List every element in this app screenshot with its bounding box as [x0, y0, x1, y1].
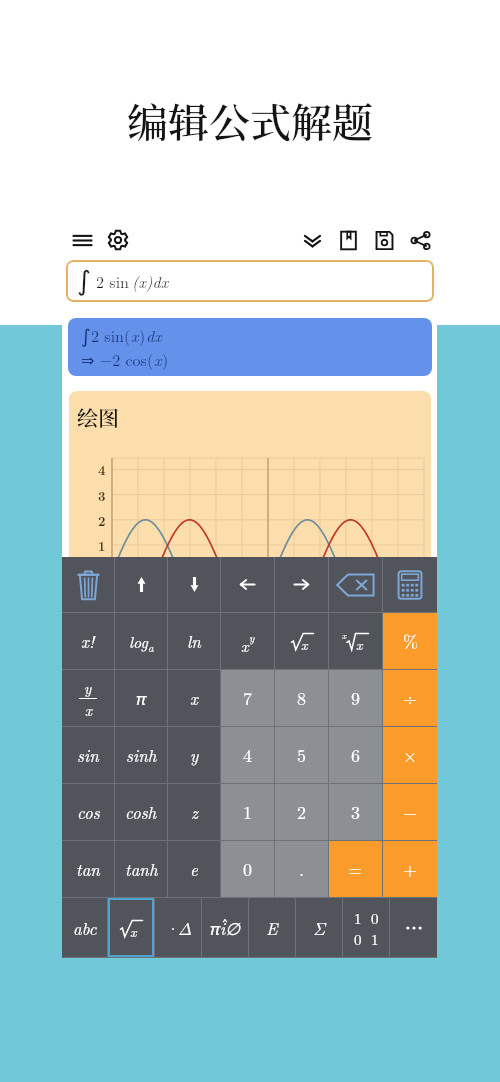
button[interactable]: sinh — [115, 727, 167, 783]
button[interactable]: Save — [366, 222, 402, 258]
staticText: x — [301, 634, 308, 654]
button[interactable]: Menu — [64, 222, 100, 258]
staticText: 2 sin( — [91, 324, 131, 347]
button[interactable]: + — [383, 841, 437, 897]
button[interactable]: x — [221, 613, 274, 669]
staticText: ∫ — [81, 325, 91, 347]
staticText: x — [85, 699, 92, 720]
button[interactable]: % — [383, 613, 437, 669]
staticText: dx — [146, 324, 162, 347]
button[interactable]: E — [249, 898, 295, 957]
staticText: π — [136, 687, 146, 710]
staticText: y — [84, 677, 92, 698]
button[interactable]: Right — [275, 557, 328, 612]
staticText: 0 — [243, 856, 252, 882]
staticText: 1 — [354, 907, 362, 928]
staticText: 9 — [351, 685, 360, 711]
button[interactable]: 8 — [275, 670, 328, 726]
staticText: abc — [73, 916, 97, 940]
button[interactable]: Bookmark — [330, 222, 366, 258]
button[interactable]: log — [115, 613, 167, 669]
staticText: ÷ — [403, 685, 418, 711]
staticText: log — [129, 630, 148, 653]
button[interactable]: ln — [168, 613, 220, 669]
button[interactable]: cos — [62, 784, 114, 840]
button[interactable]: 1 — [221, 784, 274, 840]
button[interactable]: 1 — [69, 391, 431, 566]
button[interactable]: e — [168, 841, 220, 897]
staticText: tan — [76, 857, 100, 881]
staticText: 1 — [243, 799, 252, 825]
staticText: 6 — [351, 742, 360, 768]
staticText: − — [403, 799, 418, 825]
button[interactable]: Down — [168, 557, 220, 612]
staticText: y — [190, 743, 199, 767]
button[interactable]: Backspace — [329, 557, 382, 612]
button[interactable]: x! — [62, 613, 114, 669]
button[interactable]: sin — [62, 727, 114, 783]
button[interactable]: ÷ — [383, 670, 437, 726]
button[interactable]: 0 — [221, 841, 274, 897]
staticText: 2 sin — [96, 270, 129, 293]
button[interactable]: Calculator — [383, 557, 437, 612]
staticText: cosh — [125, 800, 157, 824]
button[interactable]: Collapse — [294, 222, 330, 258]
button[interactable]: . — [275, 841, 328, 897]
button[interactable]: Share — [402, 222, 438, 258]
button[interactable]: ∫ — [68, 318, 432, 376]
button[interactable]: 2 — [275, 784, 328, 840]
button[interactable] — [390, 898, 437, 957]
button[interactable]: Delete — [62, 557, 114, 612]
staticText: 5 — [297, 742, 306, 768]
staticText: 绘图 — [77, 402, 119, 432]
staticText: x — [241, 634, 249, 657]
button[interactable]: y — [62, 670, 114, 726]
button[interactable]: × — [383, 727, 437, 783]
staticText: ·Δ — [165, 916, 192, 940]
button[interactable]: 4 — [221, 727, 274, 783]
staticText: tanh — [125, 857, 158, 881]
button[interactable]: ∫ — [66, 260, 434, 302]
button[interactable]: 7 — [221, 670, 274, 726]
button[interactable]: Up — [115, 557, 167, 612]
button[interactable]: ·Δ — [155, 898, 201, 957]
staticText: + — [403, 856, 418, 882]
staticText: 编辑公式解题 — [127, 91, 373, 150]
staticText: x — [190, 686, 198, 710]
button[interactable]: z — [168, 784, 220, 840]
button[interactable]: y — [168, 727, 220, 783]
staticText: 3 — [351, 799, 360, 825]
staticText: 4 — [243, 742, 252, 768]
staticText: % — [403, 628, 418, 654]
button[interactable]: Σ — [296, 898, 342, 957]
button[interactable]: 3 — [329, 784, 382, 840]
staticText: Σ — [313, 916, 326, 940]
button[interactable]: x — [275, 613, 328, 669]
staticText: 8 — [297, 685, 306, 711]
staticText: 2 — [297, 799, 306, 825]
staticText: × — [403, 742, 418, 768]
button[interactable]: tan — [62, 841, 114, 897]
button[interactable]: 9 — [329, 670, 382, 726]
staticText: 1 — [371, 928, 379, 949]
button[interactable]: cosh — [115, 784, 167, 840]
button[interactable]: Settings — [100, 222, 136, 258]
button[interactable]: x — [168, 670, 220, 726]
button[interactable]: 5 — [275, 727, 328, 783]
button[interactable]: x — [329, 613, 382, 669]
staticText: 4 — [98, 460, 106, 478]
button[interactable]: 1 — [343, 898, 389, 957]
staticText: . — [299, 856, 305, 882]
button[interactable]: tanh — [115, 841, 167, 897]
staticText: x — [342, 629, 347, 642]
button[interactable]: − — [383, 784, 437, 840]
button[interactable]: x — [108, 898, 154, 957]
staticText: x — [130, 921, 137, 941]
button[interactable]: π — [115, 670, 167, 726]
button[interactable]: = — [329, 841, 382, 897]
button[interactable]: πi∅ — [202, 898, 248, 957]
button[interactable]: 6 — [329, 727, 382, 783]
staticText: 7 — [243, 685, 252, 711]
button[interactable]: abc — [62, 898, 107, 957]
button[interactable]: Left — [221, 557, 274, 612]
